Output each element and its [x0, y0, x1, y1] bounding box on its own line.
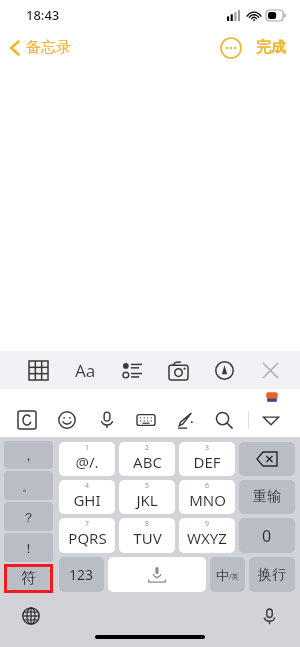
button[interactable]: ！ [4, 533, 53, 562]
button[interactable]: Emoji [52, 405, 82, 435]
button[interactable]: Delete [239, 442, 295, 476]
staticText: 9 [205, 519, 210, 529]
button[interactable]: Table [22, 354, 54, 386]
staticText: ？ [22, 509, 35, 525]
button[interactable]: Camera [162, 354, 194, 386]
button[interactable]: Close [254, 354, 286, 386]
button[interactable]: 换行 [249, 557, 295, 592]
button[interactable]: Sogou [12, 405, 42, 435]
staticText: ， [22, 447, 35, 463]
button[interactable]: Space [108, 557, 206, 592]
staticText: 重输 [253, 488, 281, 506]
staticText: 123 [69, 565, 94, 584]
staticText: ABC [133, 452, 162, 472]
staticText: 18:43 [26, 6, 60, 24]
staticText: 0 [262, 525, 272, 547]
button[interactable]: 3 [179, 442, 235, 476]
button[interactable]: 。 [4, 471, 53, 500]
staticText: 备忘录 [26, 38, 71, 57]
button[interactable]: 123 [59, 557, 104, 592]
staticText: 2 [145, 443, 150, 453]
staticText: ！ [22, 540, 35, 556]
button[interactable]: Checklist [116, 354, 148, 386]
staticText: 完成 [256, 38, 286, 57]
staticText: WXYZ [187, 528, 227, 548]
staticText: 5 [145, 481, 150, 491]
staticText: 6 [205, 481, 210, 491]
button[interactable]: Handwriting [170, 405, 200, 435]
staticText: 中 [216, 567, 229, 583]
button[interactable]: 2 [119, 442, 175, 476]
button[interactable]: 0 [239, 518, 295, 553]
button[interactable]: 4 [59, 480, 115, 514]
staticText: 8 [145, 519, 150, 529]
button[interactable]: 完成 [254, 34, 288, 61]
staticText: 3 [205, 443, 210, 453]
button[interactable]: Collapse keyboard [256, 405, 286, 435]
staticText: /英 [229, 572, 239, 582]
button[interactable]: 9 [179, 518, 235, 553]
button[interactable]: 8 [119, 518, 175, 553]
button[interactable]: Text format [69, 354, 101, 386]
staticText: GHI [73, 490, 101, 510]
staticText: 1 [85, 443, 90, 453]
button[interactable]: ， [4, 441, 53, 469]
button[interactable]: 中 [210, 557, 245, 592]
button[interactable]: 重输 [239, 480, 295, 514]
button[interactable]: More options [220, 37, 242, 59]
staticText: JKL [136, 490, 158, 510]
button[interactable]: 7 [59, 518, 115, 553]
staticText: TUV [133, 528, 162, 548]
button[interactable]: 备忘录 [0, 34, 79, 61]
button[interactable]: Voice input [256, 603, 282, 629]
button[interactable]: Keyboard [131, 405, 161, 435]
button[interactable]: 6 [179, 480, 235, 514]
staticText: 换行 [258, 566, 286, 584]
staticText: 符 [21, 569, 36, 588]
staticText: DEF [193, 452, 221, 472]
button[interactable]: Draw [208, 354, 240, 386]
button[interactable]: Voice input [92, 405, 122, 435]
staticText: PQRS [68, 528, 107, 548]
staticText: 4 [85, 481, 90, 491]
staticText: Aa [75, 359, 96, 382]
button[interactable]: Search [209, 405, 239, 435]
staticText: 7 [85, 519, 90, 529]
button[interactable]: 1 [59, 442, 115, 476]
button[interactable]: ？ [4, 502, 53, 531]
button[interactable]: Switch language [18, 603, 44, 629]
staticText: MNO [189, 490, 226, 510]
button[interactable]: 符 [7, 567, 50, 590]
staticText: 。 [22, 478, 35, 494]
button[interactable]: 5 [119, 480, 175, 514]
staticText: @/. [75, 452, 99, 472]
